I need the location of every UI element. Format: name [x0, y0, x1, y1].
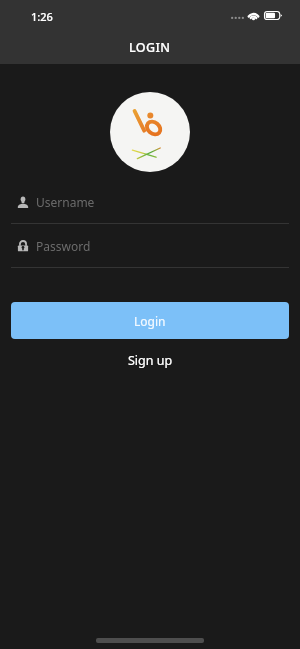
- staticText: Username: [36, 194, 95, 210]
- staticText: 1:26: [31, 9, 53, 24]
- other: Password: [17, 240, 29, 252]
- button[interactable]: Sign up: [118, 348, 183, 373]
- staticText: LOGIN: [129, 39, 171, 56]
- button[interactable]: Username: [11, 193, 289, 223]
- button[interactable]: Password: [11, 237, 289, 267]
- staticText: Password: [36, 238, 91, 254]
- staticText: Sign up: [128, 352, 173, 369]
- button[interactable]: Login: [11, 302, 289, 339]
- staticText: Login: [134, 313, 166, 329]
- other: Username: [17, 196, 29, 208]
